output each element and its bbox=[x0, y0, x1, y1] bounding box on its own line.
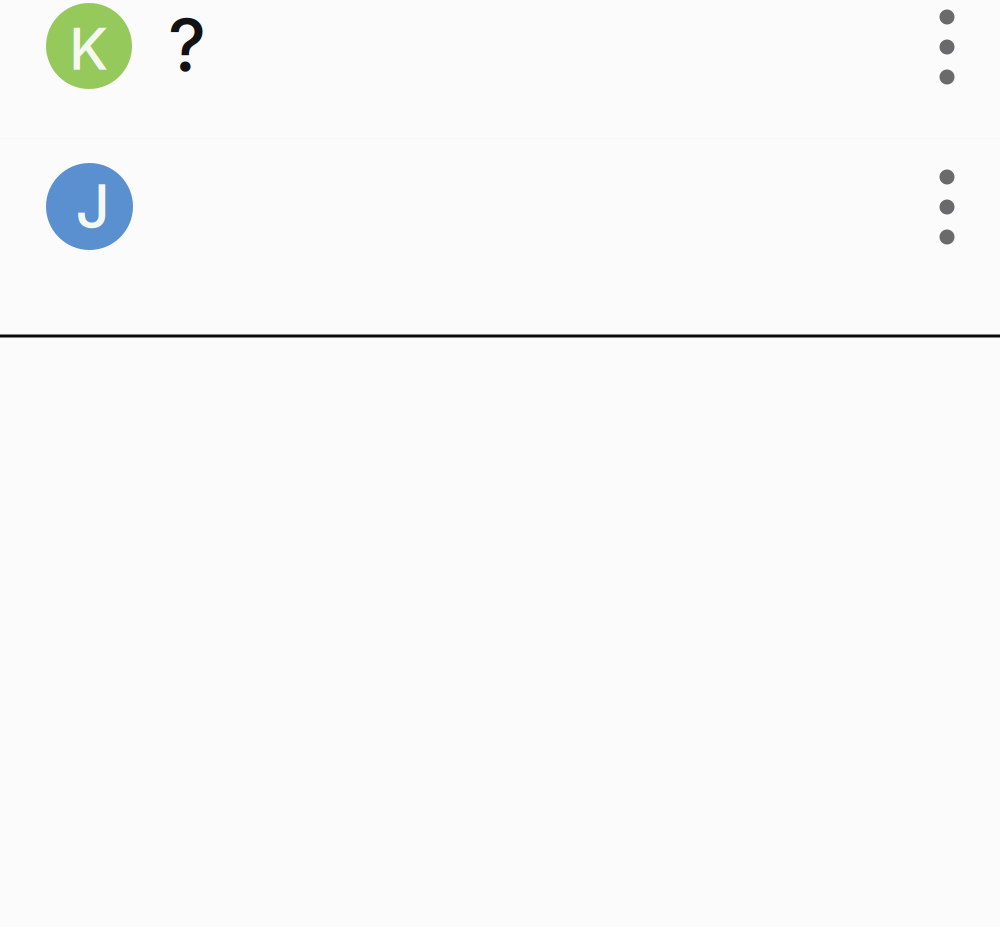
staticText: J bbox=[75, 170, 110, 243]
button[interactable]: More options bbox=[917, 157, 977, 257]
button[interactable]: J bbox=[0, 139, 1000, 335]
staticText: K bbox=[69, 14, 108, 84]
button[interactable]: More options bbox=[917, 0, 977, 97]
staticText: ? bbox=[168, 1, 206, 88]
button[interactable]: K bbox=[0, 0, 1000, 138]
